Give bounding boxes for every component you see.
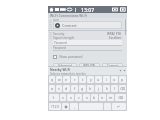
staticText: k: [106, 86, 108, 91]
button[interactable]: Keyboard settings: [123, 69, 126, 72]
button[interactable]: [62, 103, 69, 110]
button[interactable]: r: [71, 76, 78, 83]
staticText: n: [101, 95, 104, 100]
staticText: y: [90, 77, 92, 82]
staticText: b: [93, 95, 96, 100]
button[interactable]: m: [107, 94, 114, 101]
button[interactable]: k: [103, 85, 110, 92]
button[interactable]: y: [87, 76, 94, 83]
staticText: u: [97, 77, 100, 82]
staticText: SSID: [53, 19, 60, 23]
staticText: Signal strength: [53, 36, 75, 40]
button[interactable]: t: [79, 76, 86, 83]
staticText: s: [58, 86, 60, 91]
staticText: Show password: [59, 55, 83, 59]
button[interactable]: g: [79, 85, 86, 92]
staticText: Select a network to join the: [50, 72, 86, 75]
staticText: j: [98, 86, 99, 91]
staticText: e: [65, 77, 68, 82]
staticText: ⌫: [118, 96, 124, 100]
button[interactable]: a: [49, 85, 55, 92]
staticText: t: [82, 77, 84, 82]
button[interactable]: ,: [70, 103, 78, 110]
button[interactable]: n: [99, 94, 106, 101]
button[interactable]: Wi-Fi Connections Wi-Fi: [48, 13, 127, 18]
staticText: Password: [54, 41, 67, 45]
staticText: a: [51, 86, 54, 91]
staticText: Advanced: [58, 64, 72, 68]
button[interactable]: p: [119, 76, 126, 83]
button[interactable]: Voice input: [119, 69, 122, 72]
button[interactable]: u: [95, 76, 102, 83]
staticText: ?123: [51, 104, 59, 109]
button[interactable]: h: [87, 85, 94, 92]
staticText: WPA2 PSK: [107, 32, 122, 36]
staticText: Connect: [62, 23, 77, 28]
button[interactable]: i: [103, 76, 110, 83]
staticText: Excellent: [109, 36, 122, 40]
staticText: c: [78, 95, 80, 100]
staticText: q: [51, 77, 54, 82]
button[interactable]: x: [67, 94, 74, 101]
staticText: 13:07: [81, 6, 95, 13]
button[interactable]: b: [91, 94, 98, 101]
button[interactable]: Advanced: [53, 63, 77, 69]
staticText: Connect: [107, 64, 119, 68]
staticText: ,: [74, 104, 75, 109]
staticText: w: [58, 77, 61, 82]
button[interactable]: j: [95, 85, 102, 92]
staticText: Security: [53, 32, 65, 36]
staticText: i: [106, 77, 107, 82]
button[interactable]: ⌫: [115, 94, 126, 101]
button[interactable]: q: [49, 76, 55, 83]
staticText: h: [89, 86, 92, 91]
button[interactable]: w: [56, 76, 62, 83]
button[interactable]: v: [83, 94, 90, 101]
staticText: p: [121, 77, 124, 82]
staticText: Nearby Wi-Fi: [50, 68, 71, 72]
button[interactable]: c: [75, 94, 82, 101]
staticText: f: [74, 86, 76, 91]
staticText: ⇧: [52, 96, 56, 100]
staticText: d: [65, 86, 68, 91]
button[interactable]: Connect: [53, 21, 122, 29]
staticText: v: [86, 95, 88, 100]
staticText: Password: [53, 46, 66, 50]
staticText: WPS PIN: [83, 64, 96, 68]
button[interactable]: WPS PIN: [79, 63, 100, 69]
button[interactable]: e: [63, 76, 70, 83]
button[interactable]: o: [111, 76, 118, 83]
button[interactable]: .: [104, 103, 111, 110]
staticText: l: [114, 86, 115, 91]
staticText: ↵: [117, 105, 121, 109]
button[interactable]: Connect: [102, 63, 123, 69]
button[interactable]: f: [71, 85, 78, 92]
button[interactable]: ⌫: [119, 85, 126, 92]
button[interactable]: Show password: [53, 54, 122, 59]
staticText: o: [113, 77, 116, 82]
button[interactable]: l: [111, 85, 118, 92]
button[interactable]: ?123: [49, 103, 61, 110]
staticText: ⌫: [120, 87, 126, 91]
staticText: g: [81, 86, 84, 91]
staticText: .: [107, 104, 108, 109]
staticText: r: [74, 77, 76, 82]
button[interactable]: ↵: [112, 103, 126, 110]
button[interactable]: z: [60, 94, 66, 101]
button[interactable]: ⇧: [49, 94, 59, 101]
button[interactable]: s: [56, 85, 62, 92]
button[interactable]: d: [63, 85, 70, 92]
button[interactable]: Password: [53, 40, 122, 45]
staticText: z: [62, 95, 64, 100]
staticText: x: [70, 95, 72, 100]
staticText: m: [109, 95, 113, 100]
staticText: Wi-Fi Connections Wi-Fi: [50, 13, 88, 18]
